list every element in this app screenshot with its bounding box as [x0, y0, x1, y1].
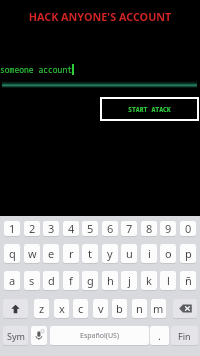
- staticText: ñ: [185, 273, 192, 288]
- staticText: 6: [107, 221, 114, 236]
- button[interactable]: v: [93, 299, 108, 318]
- button[interactable]: a: [4, 271, 20, 290]
- button[interactable]: 2: [24, 221, 40, 236]
- button[interactable]: ñ: [180, 271, 196, 290]
- button[interactable]: j: [121, 271, 137, 290]
- button[interactable]: Español(US): [50, 326, 149, 345]
- staticText: o: [165, 246, 172, 261]
- button[interactable]: w: [24, 244, 40, 263]
- staticText: g: [87, 273, 94, 288]
- button[interactable]: Sym: [3, 326, 28, 345]
- button[interactable]: 4: [63, 221, 79, 236]
- staticText: 5: [87, 221, 94, 236]
- button[interactable]: y: [102, 244, 118, 263]
- button[interactable]: 9: [160, 221, 176, 236]
- staticText: r: [69, 246, 74, 261]
- staticText: p: [185, 246, 192, 261]
- staticText: Fin: [178, 330, 191, 342]
- button[interactable]: 0: [180, 221, 196, 236]
- staticText: t: [88, 246, 92, 261]
- staticText: .: [158, 328, 161, 343]
- staticText: HACK ANYONE'S ACCOUNT: [0, 9, 200, 24]
- button[interactable]: i: [141, 244, 157, 263]
- staticText: 0: [185, 221, 192, 236]
- button[interactable]: .: [150, 326, 169, 345]
- staticText: i: [148, 246, 151, 261]
- button[interactable]: r: [63, 244, 79, 263]
- staticText: q: [9, 246, 16, 261]
- button[interactable]: 6: [102, 221, 118, 236]
- staticText: START ATACK: [128, 105, 171, 114]
- staticText: k: [146, 273, 152, 288]
- staticText: u: [126, 246, 133, 261]
- button[interactable]: p: [180, 244, 196, 263]
- staticText: z: [39, 301, 45, 316]
- button[interactable]: d: [43, 271, 59, 290]
- button[interactable]: START ATACK: [102, 99, 197, 119]
- staticText: e: [48, 246, 55, 261]
- button[interactable]: 7: [121, 221, 137, 236]
- button[interactable]: h: [102, 271, 118, 290]
- staticText: d: [48, 273, 55, 288]
- button[interactable]: k: [141, 271, 157, 290]
- staticText: h: [107, 273, 114, 288]
- staticText: n: [136, 301, 143, 316]
- button[interactable]: g: [82, 271, 98, 290]
- staticText: y: [107, 246, 113, 261]
- staticText: w: [28, 246, 37, 261]
- staticText: f: [69, 273, 73, 288]
- button[interactable]: q: [4, 244, 20, 263]
- button[interactable]: 8: [141, 221, 157, 236]
- button[interactable]: z: [34, 299, 49, 318]
- staticText: 1: [9, 221, 16, 236]
- staticText: m: [153, 301, 164, 316]
- staticText: x: [59, 301, 65, 316]
- staticText: l: [167, 273, 170, 288]
- staticText: 7: [126, 221, 133, 236]
- button[interactable]: x: [54, 299, 69, 318]
- staticText: 2: [29, 221, 36, 236]
- button[interactable]: Voice input: [31, 326, 47, 345]
- button[interactable]: b: [112, 299, 127, 318]
- button[interactable]: o: [160, 244, 176, 263]
- button[interactable]: Shift: [3, 299, 28, 318]
- button[interactable]: Fin: [171, 326, 198, 345]
- button[interactable]: e: [43, 244, 59, 263]
- staticText: 9: [165, 221, 172, 236]
- button[interactable]: l: [160, 271, 176, 290]
- button[interactable]: s: [24, 271, 40, 290]
- staticText: a: [9, 273, 16, 288]
- button[interactable]: u: [121, 244, 137, 263]
- staticText: 4: [68, 221, 75, 236]
- staticText: Sym: [7, 330, 25, 342]
- button[interactable]: f: [63, 271, 79, 290]
- staticText: 8: [146, 221, 153, 236]
- staticText: someone account: [0, 64, 72, 75]
- button[interactable]: 3: [43, 221, 59, 236]
- button[interactable]: 1: [4, 221, 20, 236]
- staticText: b: [116, 301, 123, 316]
- button[interactable]: t: [82, 244, 98, 263]
- staticText: c: [78, 301, 84, 316]
- button[interactable]: Backspace: [173, 299, 197, 318]
- staticText: 3: [48, 221, 55, 236]
- button[interactable]: 5: [82, 221, 98, 236]
- staticText: v: [98, 301, 104, 316]
- staticText: s: [29, 273, 35, 288]
- button[interactable]: m: [151, 299, 166, 318]
- staticText: Español(US): [80, 331, 120, 341]
- button[interactable]: c: [73, 299, 88, 318]
- staticText: j: [128, 273, 131, 288]
- button[interactable]: n: [132, 299, 147, 318]
